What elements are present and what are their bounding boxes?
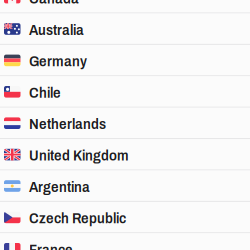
button[interactable]: Australia [0, 13, 250, 45]
staticText: Argentina [29, 179, 90, 195]
button[interactable]: Chile [0, 76, 250, 108]
staticText: Chile [29, 85, 61, 101]
staticText: Australia [29, 22, 84, 38]
button[interactable]: Netherlands [0, 108, 250, 139]
button[interactable]: Argentina [0, 170, 250, 202]
button[interactable]: Canada [0, 0, 250, 13]
staticText: Czech Republic [29, 210, 126, 226]
staticText: Germany [29, 53, 87, 69]
staticText: Canada [29, 0, 79, 7]
button[interactable]: Germany [0, 45, 250, 76]
button[interactable]: United Kingdom [0, 139, 250, 170]
staticText: United Kingdom [29, 147, 129, 164]
staticText: Netherlands [29, 116, 106, 132]
button[interactable]: Czech Republic [0, 202, 250, 233]
button[interactable]: France [0, 233, 250, 250]
staticText: France [29, 242, 73, 250]
